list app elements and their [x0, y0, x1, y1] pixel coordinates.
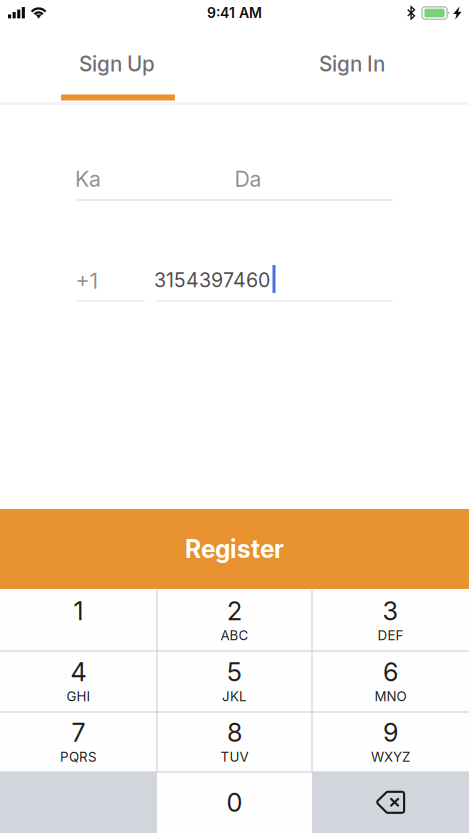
staticText: DEF [377, 627, 403, 643]
staticText: 5 [227, 657, 242, 687]
staticText: 0 [226, 787, 242, 818]
staticText: ABC [220, 627, 248, 643]
button[interactable]: Delete [312, 772, 469, 833]
staticText: 8 [227, 717, 242, 748]
button[interactable]: 2 [157, 590, 312, 651]
staticText: 9 [383, 717, 398, 748]
staticText: JKL [222, 688, 247, 704]
button[interactable]: 4 [0, 651, 157, 712]
staticText: 3154397460 [154, 268, 270, 292]
staticText: 1 [73, 596, 83, 626]
button[interactable]: 9 [312, 712, 469, 772]
button[interactable]: 1 [0, 590, 157, 651]
staticText: +1 [75, 268, 98, 294]
staticText: PQRS [60, 749, 97, 765]
button[interactable]: 6 [312, 651, 469, 712]
staticText: 2 [227, 596, 242, 626]
button[interactable]: 0 [157, 772, 312, 833]
staticText: Register [185, 534, 284, 564]
staticText: MNO [374, 688, 406, 704]
button[interactable]: 8 [157, 712, 312, 772]
staticText: 6 [383, 657, 398, 687]
staticText: TUV [220, 749, 248, 765]
staticText: 9:41 AM [207, 4, 262, 21]
button[interactable]: Sign In [234, 26, 469, 102]
button[interactable]: 7 [0, 712, 157, 772]
staticText: 7 [71, 717, 85, 748]
staticText: Sign In [319, 51, 385, 76]
staticText: Da [234, 166, 261, 192]
button[interactable]: Sign Up [0, 26, 234, 102]
staticText: GHI [66, 688, 90, 704]
staticText: WXYZ [371, 749, 410, 765]
staticText: 3 [382, 596, 398, 626]
staticText: Sign Up [79, 51, 155, 76]
staticText: 4 [70, 657, 86, 687]
button[interactable]: Register [0, 509, 469, 589]
button[interactable]: 3 [312, 590, 469, 651]
staticText: Ka [75, 166, 101, 192]
button[interactable]: 5 [157, 651, 312, 712]
